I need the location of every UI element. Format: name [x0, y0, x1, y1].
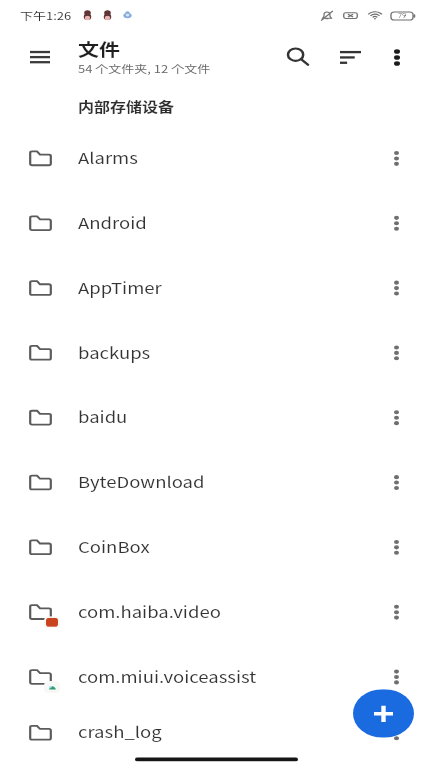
button[interactable]: Sort: [326, 36, 374, 79]
button[interactable]: Search: [274, 35, 322, 78]
button[interactable]: Add: [353, 689, 414, 738]
staticText: Android: [78, 212, 147, 234]
button[interactable]: Android: [0, 190, 432, 255]
button[interactable]: com.miui.voiceassist: [0, 644, 432, 709]
button[interactable]: More options: [372, 203, 420, 243]
staticText: 内部存储设备: [78, 97, 175, 116]
button[interactable]: More options: [372, 657, 420, 697]
button[interactable]: More options: [372, 333, 420, 372]
button[interactable]: Menu: [14, 33, 66, 82]
button[interactable]: CoinBox: [0, 514, 432, 579]
staticText: 79: [398, 12, 407, 20]
staticText: baidu: [78, 406, 128, 428]
staticText: 54 个文件夹, 12 个文件: [78, 61, 211, 76]
button[interactable]: More options: [373, 36, 421, 79]
staticText: Alarms: [78, 147, 138, 169]
button[interactable]: More options: [372, 463, 420, 502]
button[interactable]: Alarms: [0, 125, 432, 190]
button[interactable]: More options: [372, 398, 420, 437]
staticText: 下午1:26: [20, 7, 72, 23]
staticText: com.haiba.video: [78, 601, 221, 623]
button[interactable]: More options: [372, 528, 420, 567]
button[interactable]: backups: [0, 320, 432, 385]
button[interactable]: baidu: [0, 385, 432, 450]
staticText: 文件: [78, 36, 120, 61]
button[interactable]: More options: [372, 713, 420, 752]
staticText: CoinBox: [78, 536, 150, 558]
button[interactable]: More options: [372, 268, 420, 308]
button[interactable]: More options: [372, 592, 420, 632]
staticText: ByteDownload: [78, 471, 205, 493]
staticText: crash_log: [78, 721, 162, 743]
button[interactable]: ByteDownload: [0, 450, 432, 514]
button[interactable]: AppTimer: [0, 255, 432, 320]
button[interactable]: com.haiba.video: [0, 579, 432, 644]
staticText: com.miui.voiceassist: [78, 665, 257, 688]
button[interactable]: More options: [372, 139, 420, 178]
button[interactable]: crash_log: [0, 709, 432, 756]
staticText: AppTimer: [78, 276, 162, 299]
staticText: backups: [78, 341, 151, 363]
